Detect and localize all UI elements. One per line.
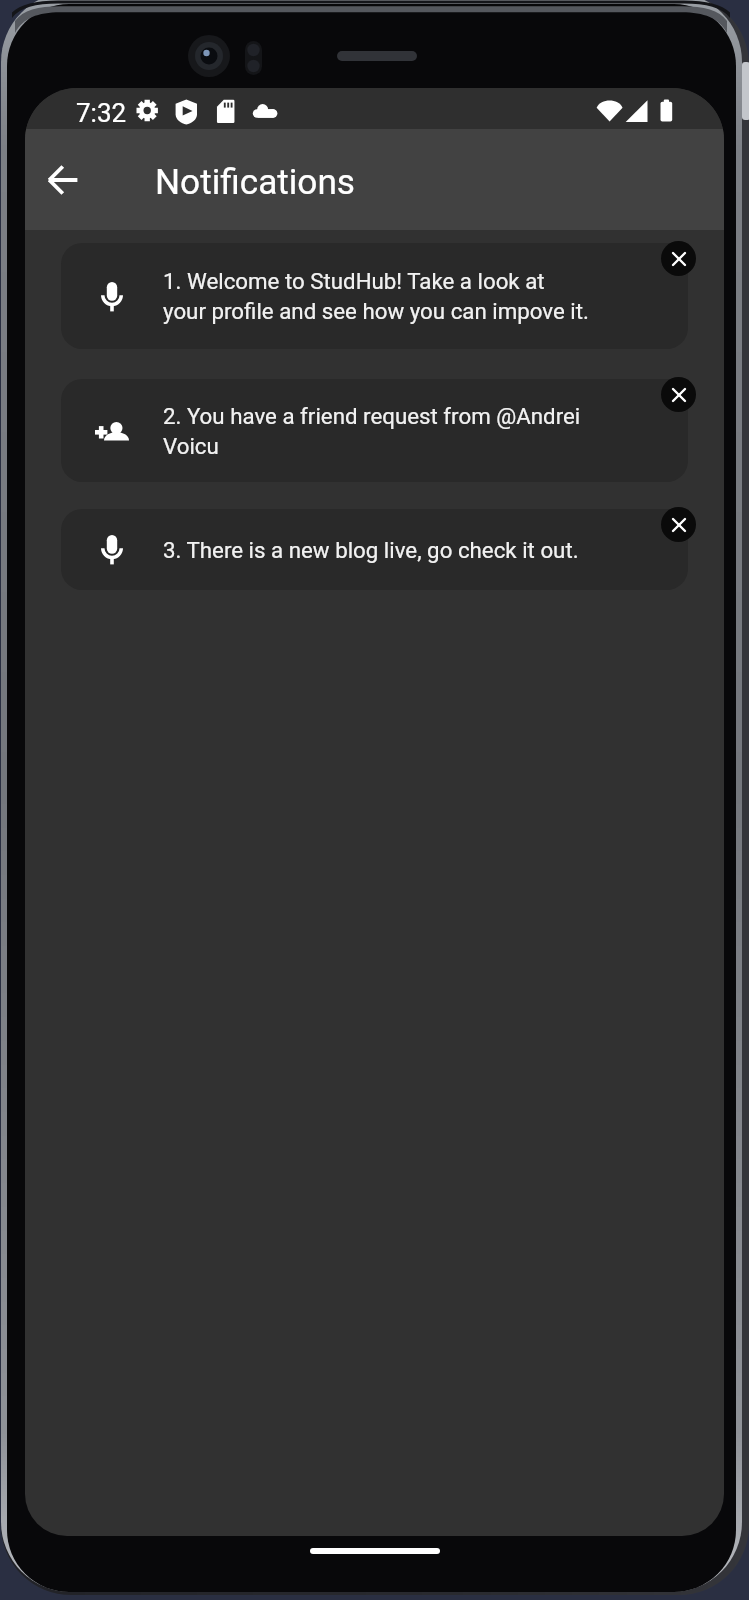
staticText: 3. There is a new blog live, go check it… [163,537,608,563]
button[interactable]: 1. Welcome to StudHub! Take a look at yo… [61,243,688,349]
staticText: 1. Welcome to StudHub! Take a look at yo… [163,268,608,324]
staticText: 7:32 [76,98,127,128]
button[interactable]: Back [32,149,94,211]
button[interactable]: Dismiss notification [661,241,696,276]
button[interactable]: 2. You have a friend request from @Andre… [61,379,688,482]
staticText: 2. You have a friend request from @Andre… [163,403,608,459]
button[interactable]: Dismiss notification [661,377,696,412]
button[interactable]: 3. There is a new blog live, go check it… [61,509,688,590]
button[interactable]: Dismiss notification [661,507,696,542]
staticText: Notifications [155,161,356,202]
